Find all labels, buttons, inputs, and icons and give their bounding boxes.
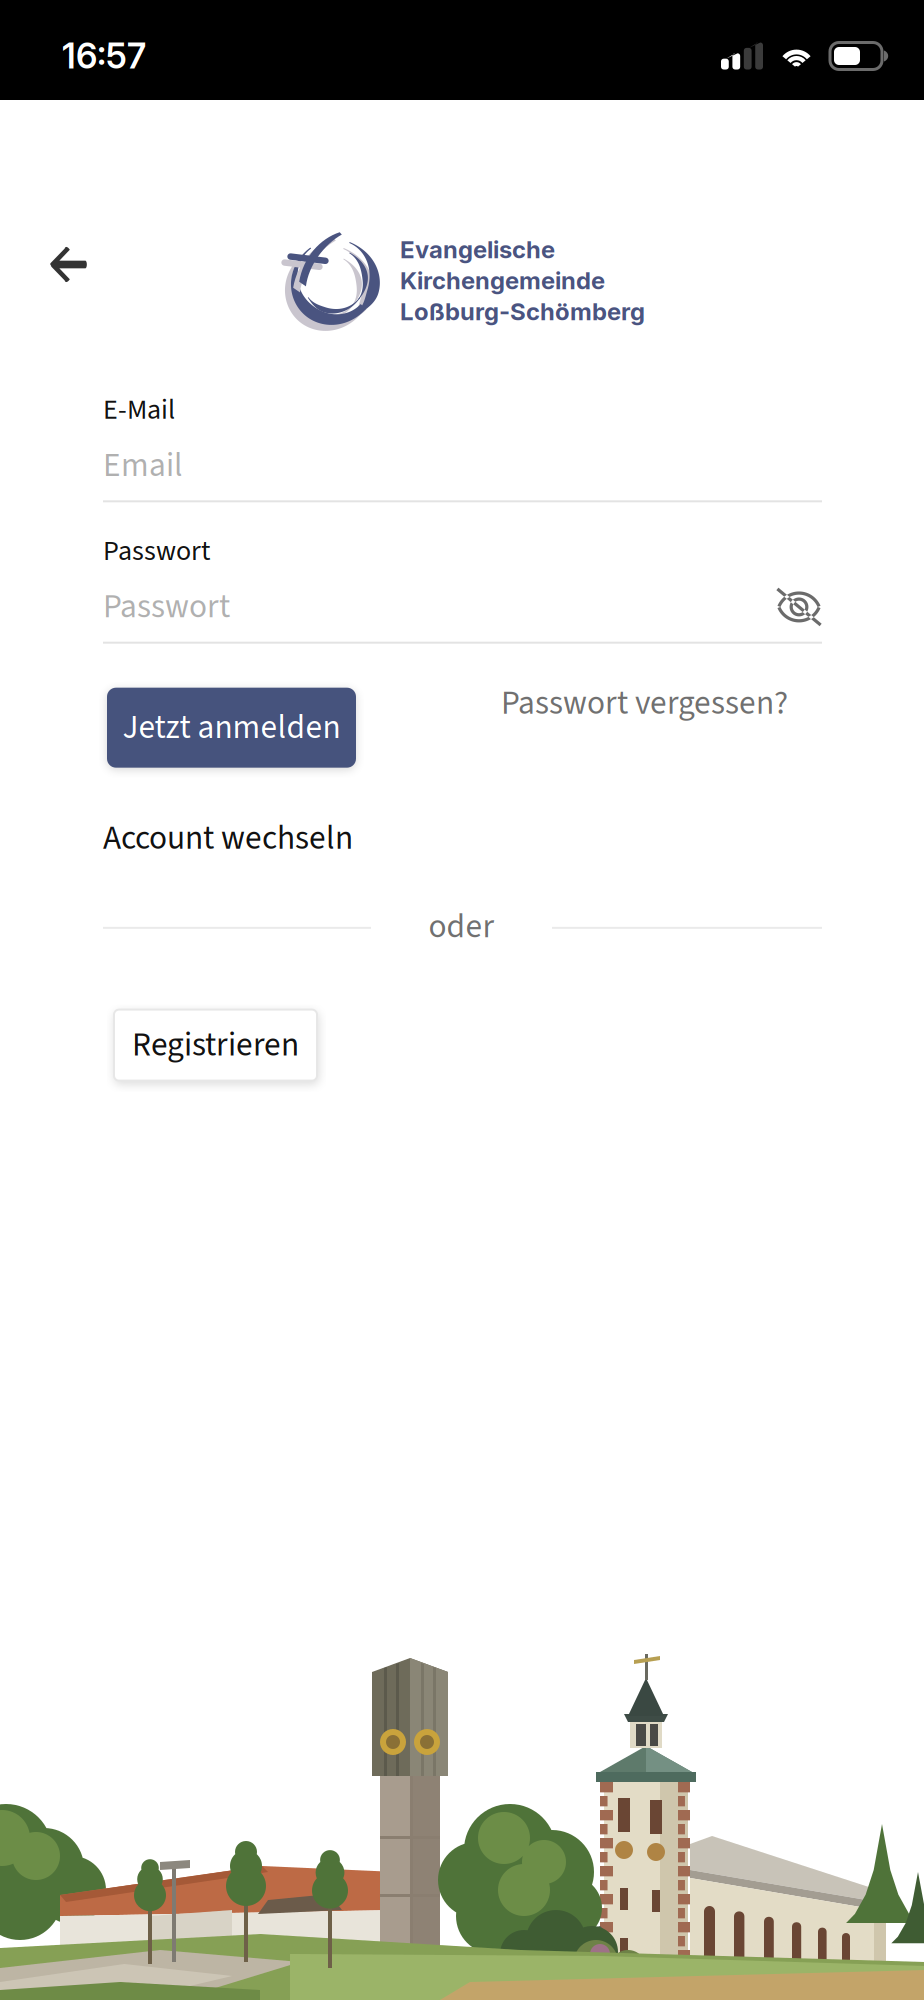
staticText: Email: [103, 442, 183, 489]
staticText: oder: [428, 903, 494, 951]
button[interactable]: Back: [0, 100, 116, 312]
button[interactable]: Registrieren: [114, 1010, 317, 1081]
staticText: E-Mail: [103, 390, 175, 430]
staticText: Kirchengemeinde: [400, 266, 605, 295]
button[interactable]: Show password: [776, 583, 822, 630]
staticText: Jetzt anmelden: [122, 704, 340, 751]
staticText: Passwort: [103, 531, 210, 571]
staticText: Passwort: [103, 583, 230, 631]
staticText: Registrieren: [132, 1021, 299, 1069]
button[interactable]: Account wechseln: [103, 815, 353, 862]
staticText: Evangelische: [400, 235, 555, 264]
staticText: 16:57: [62, 35, 146, 77]
staticText: Passwort vergessen?: [501, 680, 788, 727]
staticText: Account wechseln: [103, 815, 353, 862]
button[interactable]: Jetzt anmelden: [107, 688, 356, 768]
staticText: Loßburg-Schömberg: [400, 297, 645, 326]
button[interactable]: Passwort vergessen?: [501, 688, 788, 765]
